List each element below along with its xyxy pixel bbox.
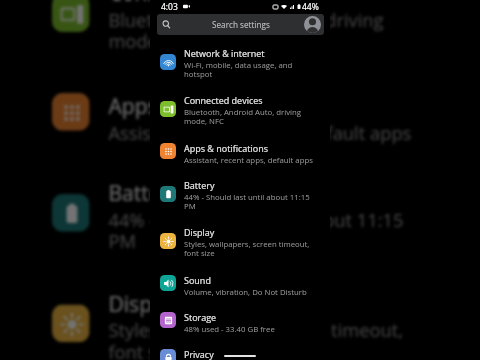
staticText: Styles, wallpapers, screen timeout, <box>184 239 310 250</box>
staticText: Bluetooth, Android Auto, driving <box>108 8 386 34</box>
staticText: Display <box>184 226 215 238</box>
staticText: Wi-Fi, mobile, data usage, and <box>184 60 293 71</box>
staticText: Battery <box>184 179 215 191</box>
button[interactable]: Battery <box>150 173 330 220</box>
staticText: Volume, vibration, Do Not Disturb <box>184 287 307 298</box>
staticText: Search settings <box>212 19 270 30</box>
staticText: Apps & notifications <box>184 142 268 154</box>
button[interactable]: Apps & notifications <box>28 77 451 164</box>
staticText: PM <box>184 201 196 212</box>
staticText: hotspot <box>184 69 213 80</box>
staticText: Connected devices <box>108 0 294 6</box>
staticText: Network & internet <box>184 47 265 59</box>
staticText: Display <box>108 288 181 316</box>
button[interactable]: Storage <box>150 305 330 342</box>
button[interactable]: Display <box>150 220 330 267</box>
staticText: Styles, wallpapers, screen timeout, <box>108 319 404 344</box>
staticText: mode, NFC <box>184 116 224 127</box>
staticText: Connected devices <box>184 94 263 106</box>
staticText: 44% - Should last until about 11:15 <box>184 192 310 203</box>
button[interactable]: Account <box>304 16 321 33</box>
staticText: 44% - Should last until about 11:15 <box>108 208 404 234</box>
staticText: Apps & notifications <box>108 91 306 119</box>
staticText: 48% used - 33.40 GB free <box>184 324 275 335</box>
staticText: Bluetooth, Android Auto, driving <box>184 107 302 118</box>
staticText: Sound <box>184 274 211 286</box>
button[interactable]: Search settings <box>157 14 324 35</box>
button[interactable]: Sound <box>150 268 330 305</box>
staticText: Assistant, recent apps, default apps <box>184 155 313 166</box>
staticText: Storage <box>184 311 217 323</box>
staticText: Assistant, recent apps, default apps <box>108 121 411 147</box>
button[interactable]: Display <box>28 274 451 360</box>
staticText: 4:03 <box>161 1 178 13</box>
staticText: PM <box>108 229 137 255</box>
staticText: mode, NFC <box>108 30 202 55</box>
staticText: font size <box>184 248 215 259</box>
button[interactable]: Network & internet <box>150 41 330 88</box>
staticText: Battery <box>108 178 181 206</box>
button[interactable]: Connected devices <box>28 0 451 74</box>
button[interactable]: Privacy <box>150 342 330 360</box>
button[interactable]: Apps & notifications <box>150 136 330 173</box>
staticText: font size <box>108 340 181 360</box>
staticText: 44% <box>302 1 319 13</box>
staticText: Privacy <box>184 348 214 360</box>
button[interactable]: Connected devices <box>150 88 330 135</box>
button[interactable]: Battery <box>28 164 451 274</box>
